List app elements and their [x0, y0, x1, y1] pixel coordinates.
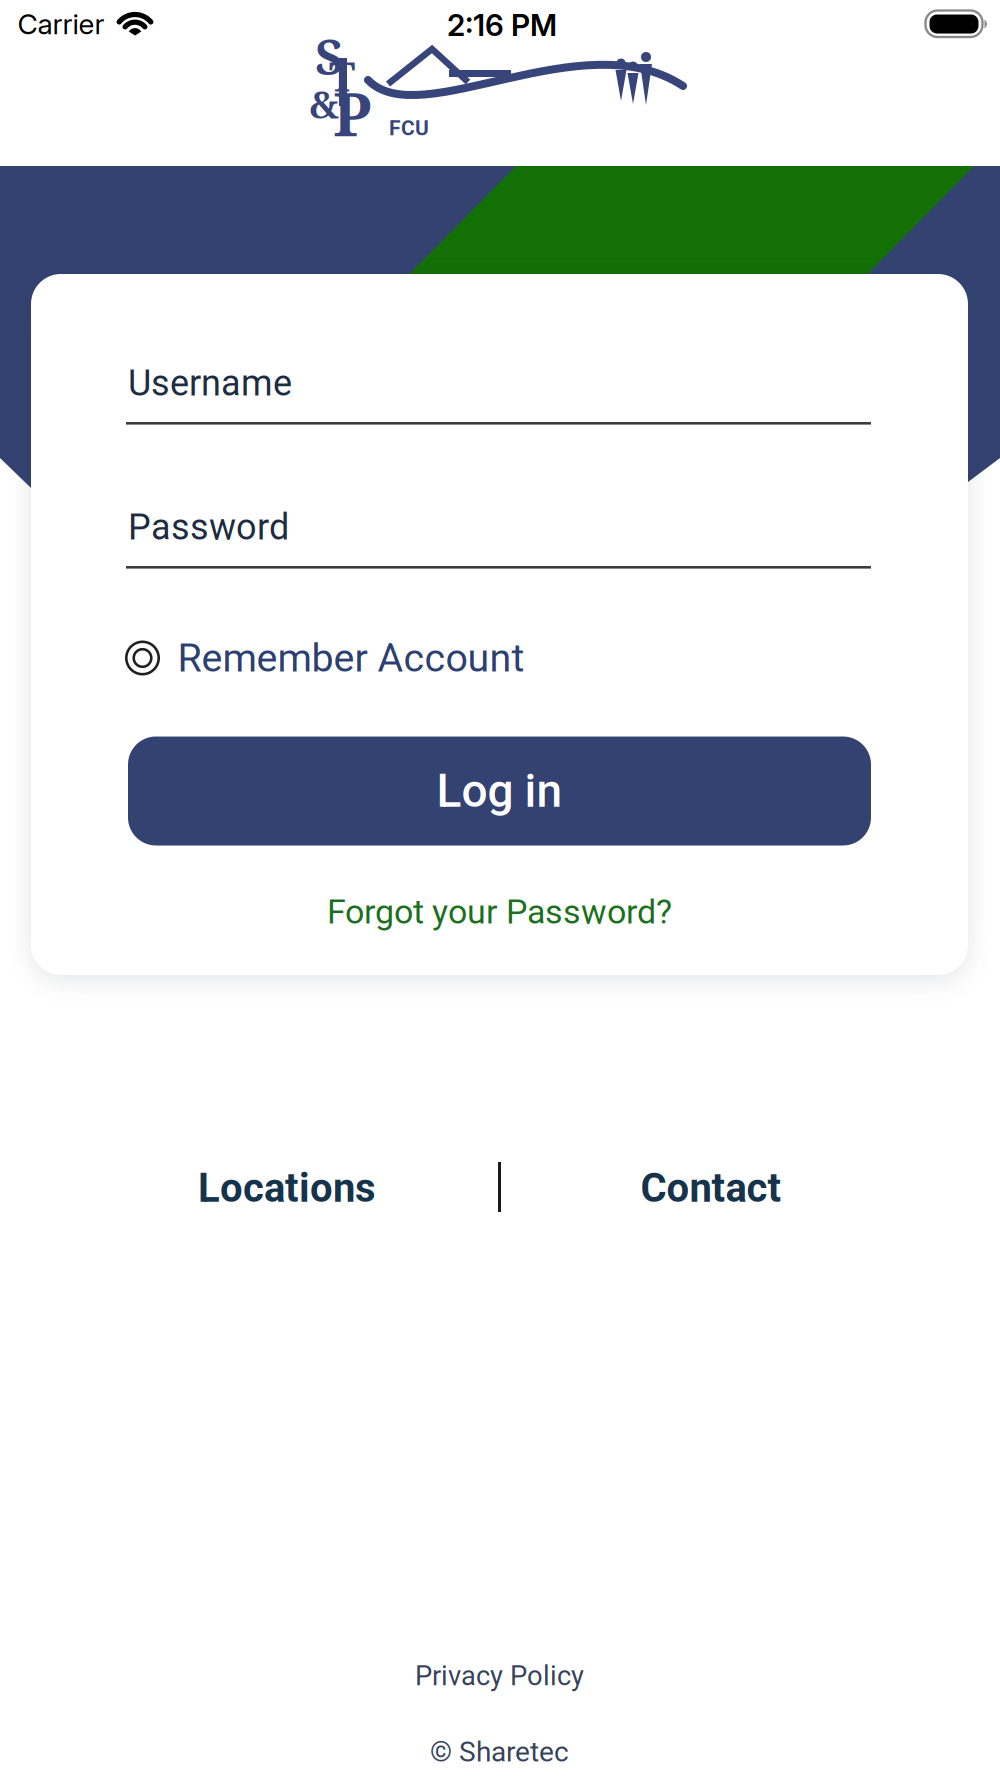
staticText: Forgot your Password?	[327, 892, 672, 932]
staticText: Password	[128, 506, 289, 548]
staticText: Privacy Policy	[415, 1660, 584, 1692]
staticText: Remember Account	[177, 635, 524, 681]
button[interactable]: Forgot your Password?	[327, 892, 672, 932]
button[interactable]: Locations	[198, 1165, 376, 1211]
button[interactable]: Remember Account	[125, 635, 524, 681]
staticText: S	[315, 23, 343, 89]
button[interactable]: Privacy Policy	[415, 1660, 584, 1692]
staticText: Username	[128, 362, 292, 404]
staticText: 2:16 PM	[447, 7, 557, 43]
staticText: © Sharetec	[430, 1736, 569, 1768]
staticText: Locations	[198, 1165, 376, 1211]
button[interactable]: Contact	[640, 1165, 781, 1211]
button[interactable]: Username	[126, 344, 871, 425]
staticText: P	[333, 72, 371, 154]
staticText: Contact	[640, 1165, 781, 1211]
button[interactable]: Password	[126, 488, 871, 569]
button[interactable]: Log in	[128, 736, 871, 845]
staticText: Carrier	[17, 7, 104, 41]
staticText: Log in	[436, 764, 562, 818]
staticText: &	[309, 79, 339, 129]
staticText: FCU	[389, 116, 429, 140]
staticText: T	[329, 49, 355, 103]
